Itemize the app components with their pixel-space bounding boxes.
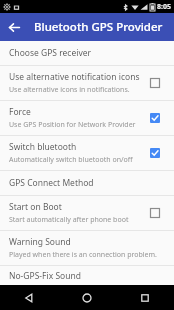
staticText: Bluetooth GPS Provider: [34, 19, 163, 35]
button[interactable]: Force: [0, 101, 174, 135]
staticText: Use GPS Position for Network Provider: [9, 120, 136, 130]
button[interactable]: No-GPS-Fix Sound: [0, 266, 174, 285]
button[interactable]: Enabled: [144, 142, 166, 164]
staticText: Force: [9, 106, 31, 118]
button[interactable]: Start on Boot: [0, 196, 174, 230]
staticText: 8:05: [157, 2, 171, 12]
button[interactable]: Recent apps: [116, 285, 174, 310]
button[interactable]: Use alternative notification icons: [0, 66, 174, 100]
button[interactable]: GPS Connect Method: [0, 171, 174, 195]
staticText: Use alternative icons in notifications.: [9, 85, 130, 95]
staticText: Automatically switch bluetooth on/off: [9, 155, 133, 165]
button[interactable]: Navigate up: [0, 13, 28, 41]
button[interactable]: Switch bluetooth: [0, 136, 174, 170]
staticText: Warning Sound: [9, 236, 71, 248]
button[interactable]: Home: [58, 285, 116, 310]
staticText: Start automatically after phone boot: [9, 215, 129, 225]
staticText: Played when there is an connection probl…: [9, 250, 157, 260]
button[interactable]: Choose GPS receiver: [0, 41, 174, 65]
button[interactable]: Disabled: [144, 202, 166, 224]
staticText: Start on Boot: [9, 201, 62, 213]
button[interactable]: Warning Sound: [0, 231, 174, 265]
button[interactable]: Disabled: [144, 72, 166, 94]
staticText: Use alternative notification icons: [9, 71, 140, 83]
button[interactable]: Enabled: [144, 107, 166, 129]
button[interactable]: Back: [0, 285, 58, 310]
staticText: Switch bluetooth: [9, 141, 77, 153]
staticText: No-GPS-Fix Sound: [9, 270, 81, 282]
staticText: GPS Connect Method: [9, 177, 94, 189]
staticText: Choose GPS receiver: [9, 47, 92, 59]
